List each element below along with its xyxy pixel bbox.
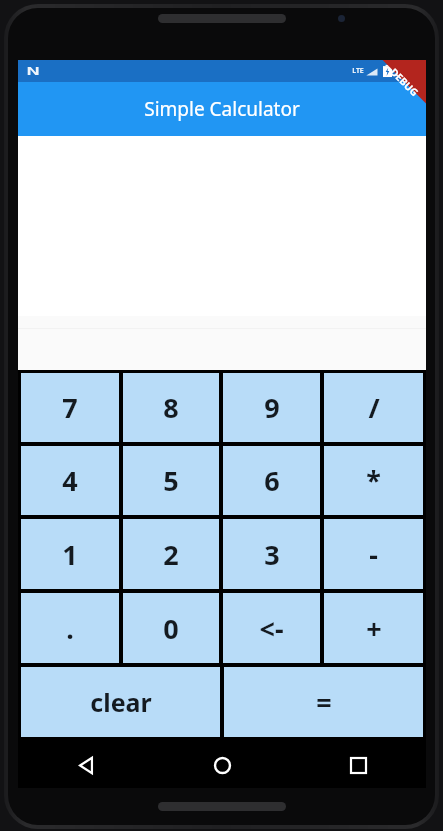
button[interactable]: 7 (21, 373, 119, 442)
button[interactable]: Home (154, 742, 290, 788)
button[interactable]: . (21, 593, 119, 663)
button[interactable]: = (224, 667, 423, 737)
staticText: * (366, 462, 381, 499)
staticText: DEBUG (387, 65, 422, 99)
button[interactable]: 6 (223, 446, 320, 515)
button[interactable]: 8 (123, 373, 219, 442)
button[interactable]: 9 (223, 373, 320, 442)
staticText: clear (90, 685, 152, 719)
button[interactable]: <- (223, 593, 320, 663)
staticText: = (316, 684, 332, 721)
staticText: LTE (352, 66, 364, 76)
staticText: / (368, 389, 380, 426)
staticText: 7 (62, 389, 78, 426)
staticText: 5 (163, 462, 179, 499)
button[interactable]: + (324, 593, 423, 663)
button[interactable]: 1 (21, 519, 119, 589)
button[interactable]: 0 (123, 593, 219, 663)
staticText: 9 (264, 389, 280, 426)
button[interactable]: / (324, 373, 423, 442)
button[interactable]: 2 (123, 519, 219, 589)
staticText: + (366, 610, 382, 647)
staticText: 4 (62, 462, 78, 499)
staticText: <- (259, 610, 284, 647)
staticText: . (66, 610, 74, 647)
button[interactable]: Back (18, 742, 154, 788)
button[interactable]: clear (21, 667, 220, 737)
button[interactable]: 4 (21, 446, 119, 515)
staticText: 2 (163, 536, 179, 573)
button[interactable]: 3 (223, 519, 320, 589)
staticText: 1 (62, 536, 78, 573)
staticText: 8 (163, 389, 179, 426)
staticText: 6 (264, 462, 280, 499)
button[interactable]: 5 (123, 446, 219, 515)
button[interactable]: Recent apps (290, 742, 426, 788)
staticText: 2:11 (396, 63, 420, 79)
button[interactable]: - (324, 519, 423, 589)
button[interactable]: * (324, 446, 423, 515)
staticText: 0 (163, 610, 179, 647)
staticText: Simple Calculator (144, 96, 300, 122)
staticText: - (369, 536, 378, 573)
staticText: 3 (264, 536, 280, 573)
